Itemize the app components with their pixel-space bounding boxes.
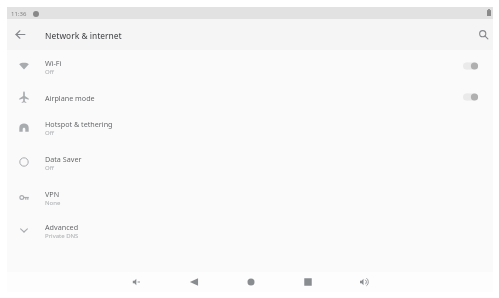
staticText: None (45, 199, 61, 207)
staticText: Network & internet (45, 30, 122, 41)
button[interactable]: Navigate up (15, 29, 26, 40)
button[interactable]: Recent apps (300, 274, 316, 290)
staticText: Off (45, 164, 54, 172)
staticText: Advanced (45, 222, 79, 232)
button[interactable]: VPN (7, 182, 493, 212)
button[interactable]: Volume down (128, 274, 144, 290)
staticText: Hotspot & tethering (45, 119, 113, 129)
staticText: Off (45, 68, 54, 76)
staticText: Data Saver (45, 154, 82, 164)
button[interactable]: Back (186, 274, 202, 290)
button[interactable]: Search (478, 29, 489, 40)
button[interactable]: Wi-Fi switch (463, 62, 478, 70)
staticText: Off (45, 129, 54, 137)
staticText: 11:36 (11, 10, 27, 18)
button[interactable]: Data Saver (7, 147, 493, 177)
button[interactable]: Home (243, 274, 259, 290)
button[interactable]: Volume up (356, 274, 372, 290)
button[interactable]: Airplane mode (7, 82, 493, 112)
button[interactable]: Wi-Fi (7, 51, 493, 81)
staticText: Private DNS (45, 232, 79, 240)
staticText: Wi-Fi (45, 58, 62, 68)
staticText: VPN (45, 189, 60, 199)
button[interactable]: Hotspot & tethering (7, 112, 493, 142)
staticText: Airplane mode (45, 93, 95, 103)
button[interactable]: Advanced (7, 215, 493, 245)
button[interactable]: Airplane mode switch (463, 93, 478, 101)
